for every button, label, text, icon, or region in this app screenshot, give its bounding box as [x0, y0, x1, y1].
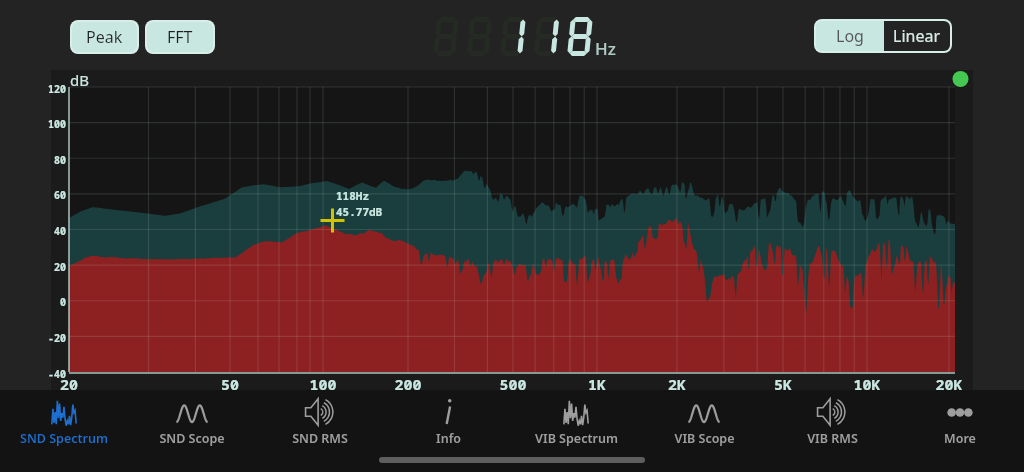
- staticText: SND RMS: [292, 430, 348, 447]
- staticText: 20: [39, 374, 99, 394]
- staticText: 0: [16, 295, 66, 309]
- staticText: -20: [16, 331, 66, 345]
- staticText: 60: [16, 188, 66, 202]
- staticText: Peak: [86, 26, 123, 48]
- staticText: 80: [16, 153, 66, 167]
- button[interactable]: SND Scope: [128, 390, 256, 454]
- staticText: 40: [16, 224, 66, 238]
- staticText: 20: [16, 260, 66, 274]
- staticText: VIB RMS: [807, 430, 858, 447]
- button[interactable]: Log: [816, 21, 884, 51]
- staticText: VIB Spectrum: [535, 430, 618, 447]
- staticText: SND Spectrum: [20, 430, 108, 447]
- staticText: 120: [16, 82, 66, 96]
- staticText: 20K: [919, 374, 979, 394]
- staticText: Linear: [893, 25, 941, 47]
- staticText: 100: [293, 374, 353, 394]
- button[interactable]: Info: [384, 390, 512, 454]
- staticText: 200: [378, 374, 438, 394]
- button[interactable]: VIB Scope: [640, 390, 768, 454]
- staticText: VIB Scope: [674, 430, 735, 447]
- staticText: Log: [836, 25, 864, 47]
- staticText: 50: [200, 374, 260, 394]
- button[interactable]: SND RMS: [256, 390, 384, 454]
- staticText: 1K: [567, 374, 627, 394]
- staticText: 45.77dB: [336, 204, 383, 219]
- button[interactable]: FFT: [147, 22, 213, 52]
- staticText: 10K: [837, 374, 897, 394]
- button[interactable]: SND Spectrum: [0, 390, 128, 454]
- staticText: SND Scope: [159, 430, 225, 447]
- button[interactable]: More: [896, 390, 1024, 454]
- button[interactable]: Linear: [884, 21, 950, 51]
- staticText: 5K: [753, 374, 813, 394]
- staticText: 118Hz: [336, 188, 369, 203]
- staticText: -40: [16, 367, 66, 381]
- button[interactable]: Peak: [72, 22, 137, 52]
- staticText: Hz: [595, 37, 616, 60]
- staticText: dB: [70, 70, 89, 90]
- staticText: FFT: [167, 26, 193, 48]
- button[interactable]: VIB RMS: [768, 390, 896, 454]
- staticText: 2K: [647, 374, 707, 394]
- staticText: 100: [16, 117, 66, 131]
- staticText: More: [944, 430, 976, 447]
- staticText: Info: [436, 430, 461, 447]
- staticText: 500: [483, 374, 543, 394]
- button[interactable]: VIB Spectrum: [512, 390, 640, 454]
